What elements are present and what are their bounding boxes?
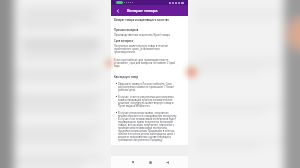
staticText: Оформите заявку в Личном кабинете. Срок … (118, 82, 177, 91)
button[interactable]: Back (162, 157, 172, 167)
staticText: В случае отклонения заявки, покупатель в… (118, 111, 177, 141)
button[interactable]: Home (145, 157, 155, 167)
staticText: Если гарантийный срок производителем не … (114, 58, 177, 67)
staticText: Причина возврата (114, 28, 139, 31)
staticText: Срок возврата (114, 39, 133, 42)
staticText: Возврат товара (127, 8, 158, 13)
staticText: Как вернуть товар (114, 75, 139, 78)
staticText: Возврат товара ненадлежащего качества (114, 18, 169, 21)
staticText: Производственный недостаток (брак) товар… (114, 33, 170, 36)
staticText: В случае, если по результатам рассмотрен… (118, 95, 177, 107)
button[interactable]: Recent apps (128, 157, 138, 167)
button[interactable]: Back (113, 6, 122, 15)
staticText: Покупатель может вернуть товар в течение… (114, 44, 177, 53)
